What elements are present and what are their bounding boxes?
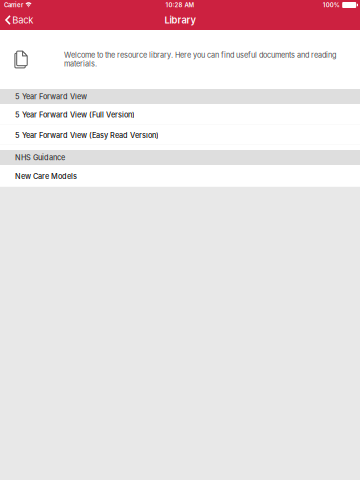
staticText: Welcome to the resource library. Here yo… [64, 51, 336, 68]
button[interactable]: New Care Models [0, 165, 360, 187]
button[interactable]: 5 Year Forward View (Easy Read Version) [0, 125, 360, 145]
staticText: NHS Guidance [15, 153, 65, 162]
button[interactable]: Back [0, 10, 38, 30]
staticText: 10:28 AM [165, 1, 194, 9]
staticText: 5 Year Forward View [15, 92, 87, 101]
staticText: 5 Year Forward View (Full Version) [15, 110, 135, 119]
staticText: Carrier [4, 1, 23, 9]
staticText: Library [164, 14, 195, 26]
staticText: New Care Models [15, 172, 77, 181]
button[interactable]: 5 Year Forward View (Full Version) [0, 104, 360, 125]
staticText: 5 Year Forward View (Easy Read Version) [15, 131, 159, 140]
staticText: 100% [323, 1, 340, 9]
staticText: Back [12, 14, 33, 26]
